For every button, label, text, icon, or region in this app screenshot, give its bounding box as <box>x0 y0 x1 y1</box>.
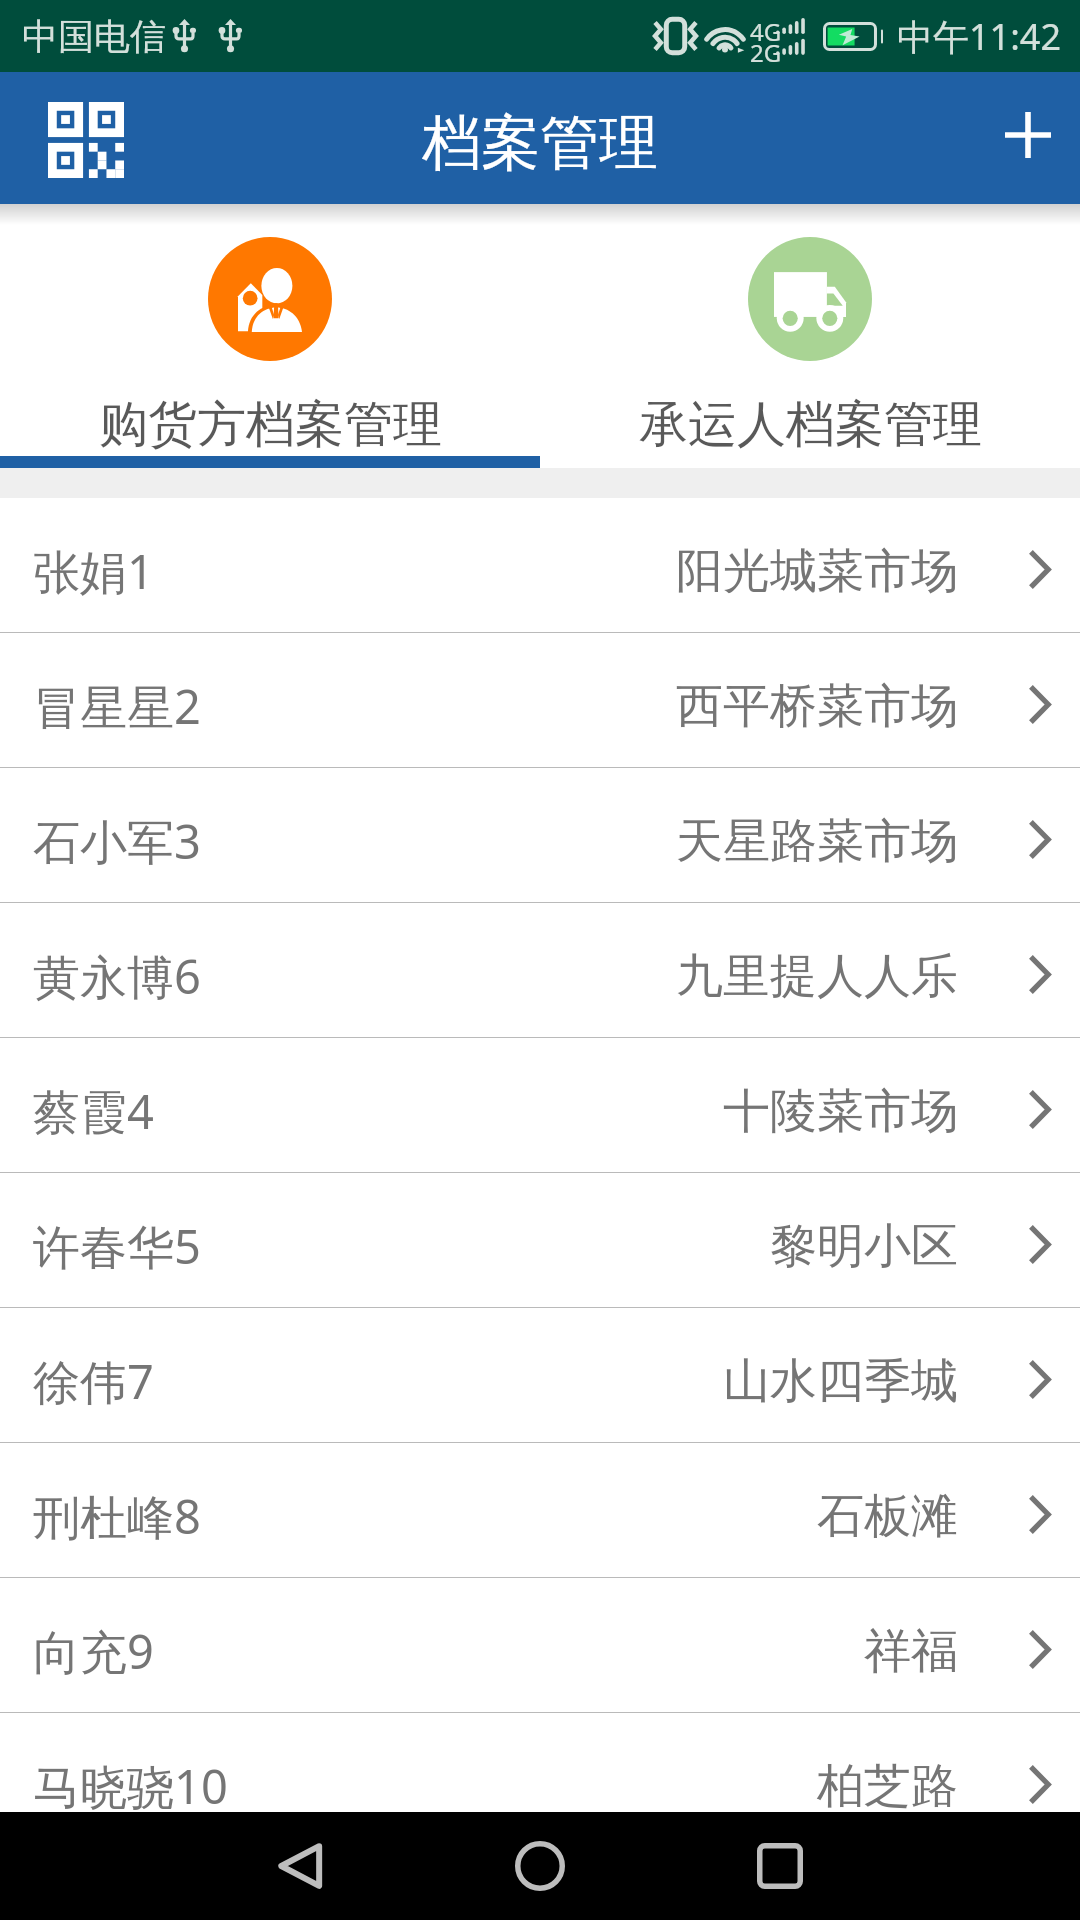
button[interactable]: 黄永博6 <box>0 903 1080 1037</box>
button[interactable]: 徐伟7 <box>0 1308 1080 1442</box>
button[interactable]: Back <box>248 1812 356 1920</box>
staticText: 石板滩 <box>817 1487 958 1546</box>
button[interactable]: 冒星星2 <box>0 633 1080 767</box>
staticText: 天星路菜市场 <box>676 812 958 871</box>
button[interactable]: Home <box>486 1812 594 1920</box>
staticText: 马晓骁10 <box>33 1754 228 1818</box>
staticText: 蔡霞4 <box>33 1079 154 1143</box>
staticText: 向充9 <box>33 1619 154 1683</box>
staticText: 4G <box>750 15 782 48</box>
staticText: 张娟1 <box>33 539 154 603</box>
staticText: 2G <box>750 36 782 69</box>
button[interactable]: 购货方档案管理 <box>0 204 540 468</box>
staticText: 山水四季城 <box>723 1352 958 1411</box>
staticText: 柏芝路 <box>817 1757 958 1816</box>
staticText: 承运人档案管理 <box>639 394 982 456</box>
staticText: 中午11:42 <box>897 12 1062 61</box>
staticText: 徐伟7 <box>33 1349 154 1413</box>
staticText: 黄永博6 <box>33 944 201 1008</box>
button[interactable]: 许春华5 <box>0 1173 1080 1307</box>
staticText: 九里提人人乐 <box>676 947 958 1006</box>
button[interactable]: 石小军3 <box>0 768 1080 902</box>
button[interactable]: 蔡霞4 <box>0 1038 1080 1172</box>
button[interactable]: 刑杜峰8 <box>0 1443 1080 1577</box>
staticText: 档案管理 <box>422 106 658 180</box>
staticText: 西平桥菜市场 <box>676 677 958 736</box>
staticText: 许春华5 <box>33 1214 201 1278</box>
button[interactable]: 马晓骁10 <box>0 1713 1080 1847</box>
button[interactable]: 向充9 <box>0 1578 1080 1712</box>
staticText: 黎明小区 <box>770 1217 958 1276</box>
staticText: 中国电信 <box>22 14 166 59</box>
staticText: 阳光城菜市场 <box>676 542 958 601</box>
staticText: 购货方档案管理 <box>99 394 442 456</box>
button[interactable]: Recent apps <box>726 1812 834 1920</box>
button[interactable]: 张娟1 <box>0 498 1080 632</box>
staticText: 十陵菜市场 <box>723 1082 958 1141</box>
button[interactable]: 承运人档案管理 <box>540 204 1080 468</box>
button[interactable]: Scan QR code <box>31 83 141 193</box>
staticText: 冒星星2 <box>33 674 201 738</box>
staticText: 祥福 <box>864 1622 958 1681</box>
staticText: 刑杜峰8 <box>33 1484 201 1548</box>
staticText: 石小军3 <box>33 809 201 873</box>
button[interactable]: Add <box>978 88 1078 188</box>
